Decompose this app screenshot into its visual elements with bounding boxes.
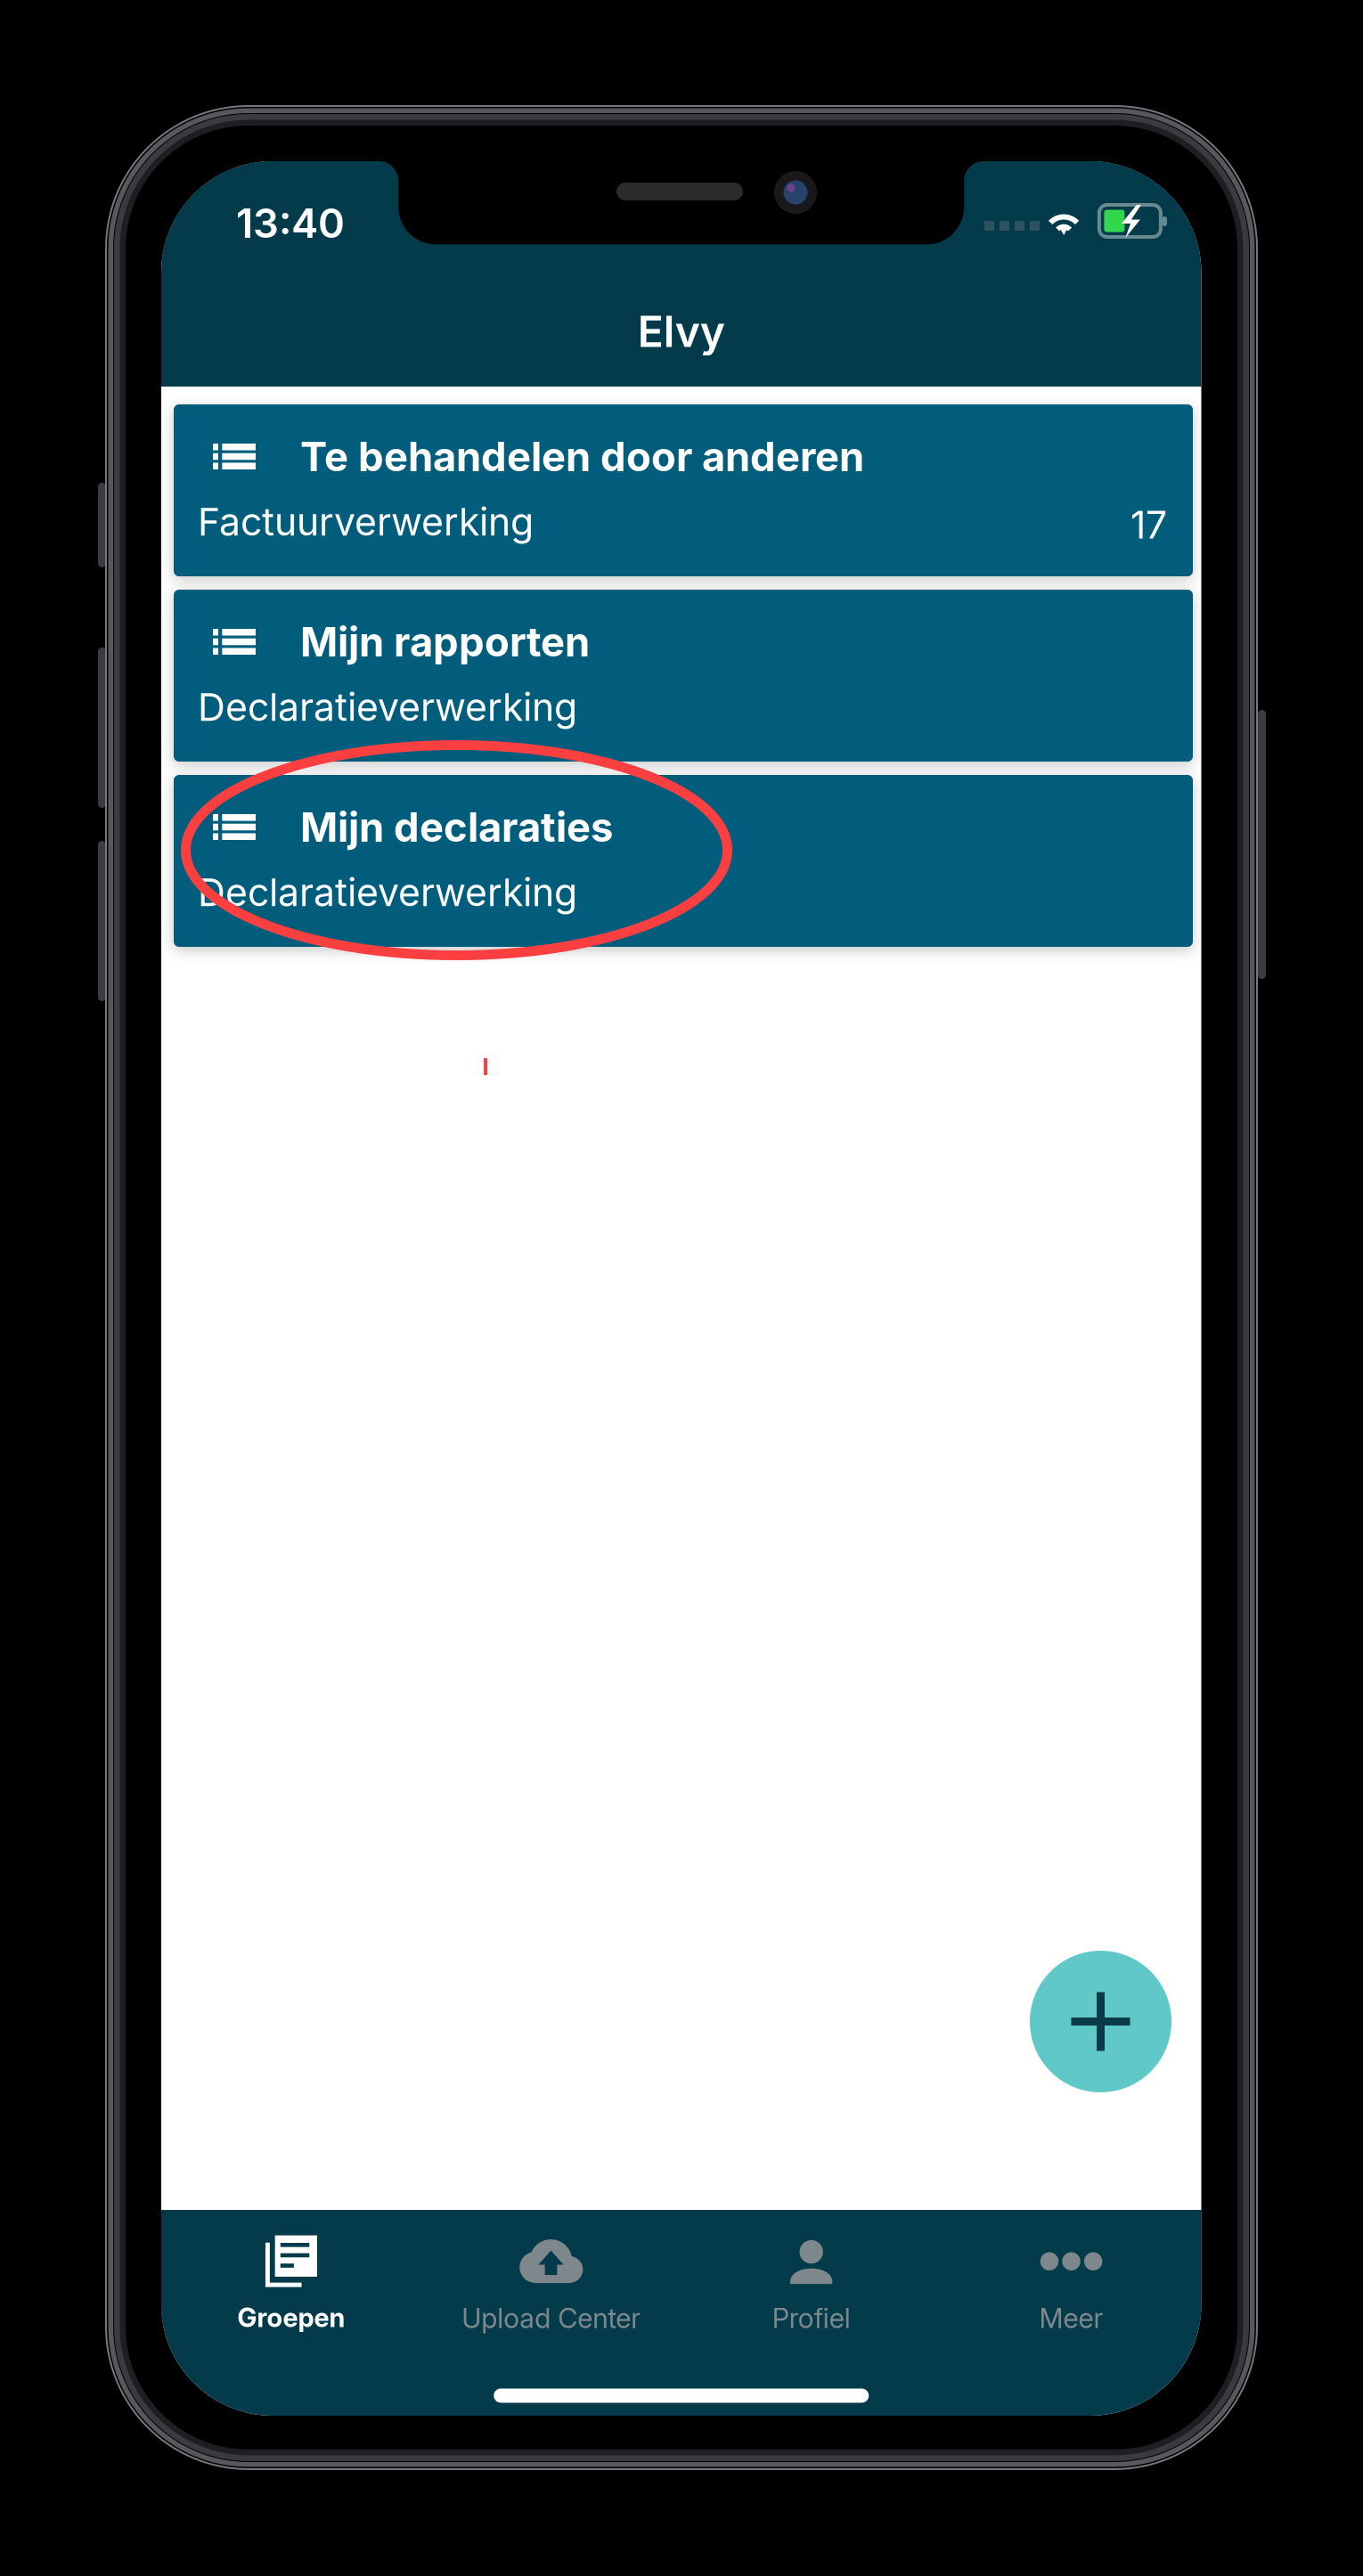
staticText: Upload Center (462, 2302, 641, 2335)
button[interactable]: Upload Center (421, 2210, 681, 2326)
button[interactable]: Nieuw item toevoegen (1030, 1951, 1171, 2092)
staticText: 13:40 (236, 199, 345, 248)
staticText: Factuurverwerking (198, 499, 534, 545)
staticText: 17 (1130, 502, 1167, 548)
button[interactable]: Mijn declaraties (174, 775, 1193, 947)
staticText: Mijn declaraties (300, 803, 613, 851)
staticText: Meer (1039, 2302, 1103, 2335)
button[interactable]: Groepen (161, 2210, 421, 2326)
staticText: Te behandelen door anderen (300, 432, 864, 481)
staticText: Profiel (772, 2302, 850, 2335)
staticText: Declaratieverwerking (198, 869, 577, 915)
staticText: Mijn rapporten (300, 617, 590, 666)
staticText: Declaratieverwerking (198, 684, 577, 730)
button[interactable]: Profiel (681, 2210, 941, 2326)
staticText: Elvy (638, 306, 725, 357)
staticText: Groepen (237, 2302, 345, 2333)
button[interactable]: Mijn rapporten (174, 590, 1193, 762)
button[interactable]: Meer (941, 2210, 1201, 2326)
button[interactable]: Te behandelen door anderen (174, 404, 1193, 576)
